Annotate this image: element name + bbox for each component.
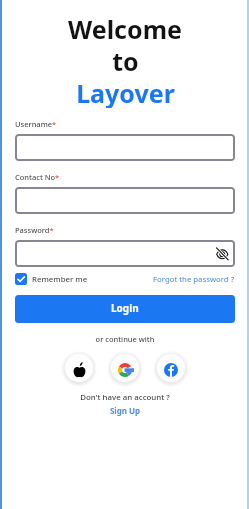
staticText: Welcome: [68, 12, 182, 44]
staticText: Don't have an account ?: [15, 392, 235, 403]
button[interactable]: [15, 187, 235, 214]
staticText: Username*: [15, 119, 57, 129]
staticText: or continue with: [15, 334, 235, 344]
button[interactable]: Remember me: [15, 273, 88, 285]
staticText: Password*: [15, 225, 54, 235]
button[interactable]: Forgot the password ?: [153, 274, 235, 285]
staticText: Login: [111, 301, 139, 315]
button[interactable]: [15, 134, 235, 161]
staticText: Remember me: [32, 274, 88, 285]
button[interactable]: Sign in with Apple: [63, 352, 95, 384]
staticText: Layover: [76, 76, 175, 108]
staticText: Sign Up: [15, 405, 235, 416]
button[interactable]: Login: [15, 295, 235, 323]
staticText: to: [112, 44, 139, 76]
staticText: Forgot the password ?: [153, 274, 235, 285]
button[interactable]: Sign in with Facebook: [155, 352, 187, 384]
button[interactable]: Sign Up: [15, 405, 235, 416]
button[interactable]: Sign in with Google: [109, 352, 141, 384]
button[interactable]: Show password: [215, 247, 229, 260]
button[interactable]: Show password: [15, 240, 235, 267]
staticText: Contact No*: [15, 172, 60, 182]
